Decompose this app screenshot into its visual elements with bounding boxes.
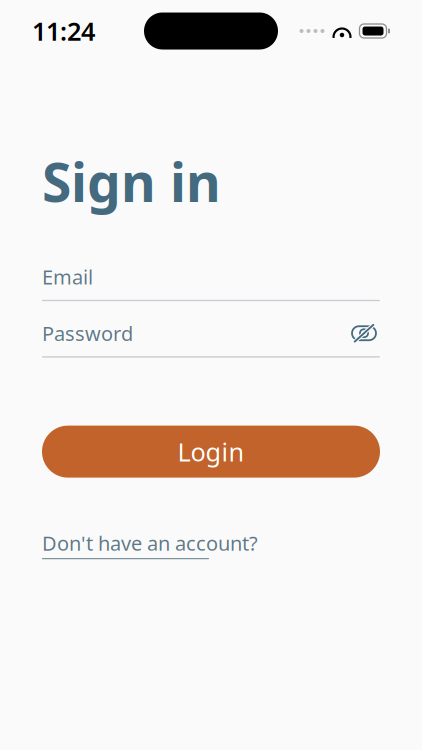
staticText: 11:24 xyxy=(32,14,95,48)
staticText: Email xyxy=(42,263,93,290)
button[interactable]: Login xyxy=(42,426,380,478)
button[interactable]: Don't have an account? xyxy=(42,530,258,559)
staticText: Password xyxy=(42,320,133,346)
staticText: Login xyxy=(177,435,244,468)
staticText: Don't have an account? xyxy=(42,530,258,556)
button[interactable]: Show password xyxy=(348,319,380,347)
staticText: Sign in xyxy=(42,146,221,217)
